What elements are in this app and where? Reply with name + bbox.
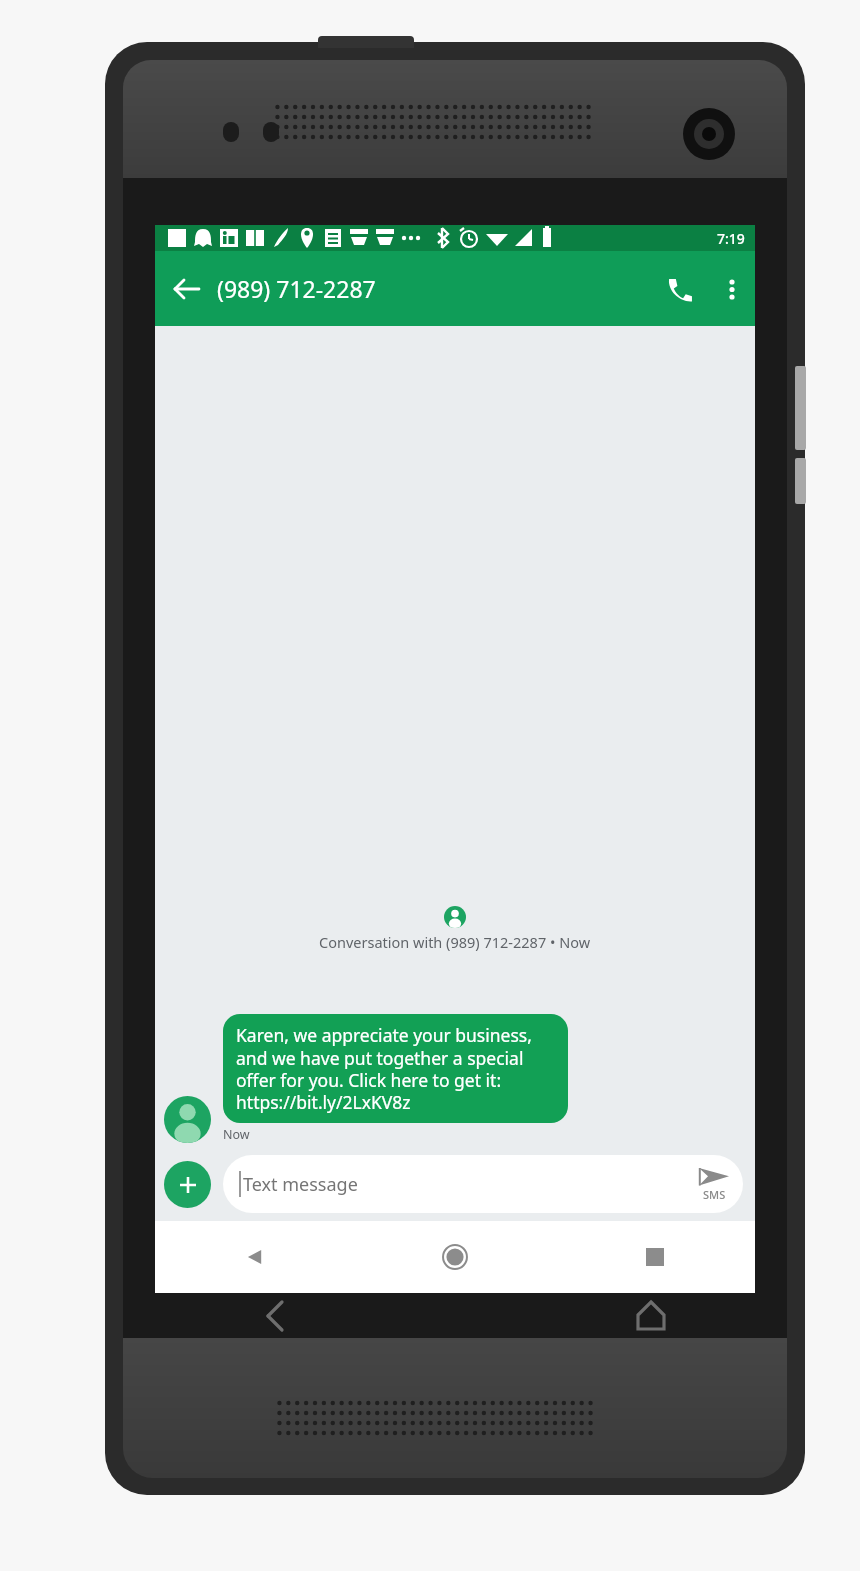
button[interactable]: Karen, we appreciate your business, and … (223, 1014, 568, 1123)
button[interactable]: Home (355, 1221, 555, 1293)
button[interactable]: Recents (555, 1221, 755, 1293)
button[interactable]: Attach (164, 1161, 211, 1208)
button[interactable]: Back (155, 251, 217, 326)
staticText: Now (223, 1126, 250, 1143)
button[interactable]: Back (155, 1221, 355, 1293)
staticText: Conversation with (989) 712-2287 • Now (319, 932, 591, 952)
staticText: SMS (703, 1187, 726, 1202)
staticText: 7:19 (717, 229, 745, 248)
button[interactable]: More options (709, 251, 755, 326)
staticText: Text message (243, 1172, 358, 1197)
button[interactable]: Text message (223, 1155, 743, 1213)
button[interactable]: Call (651, 251, 709, 326)
staticText: Karen, we appreciate your business, and … (236, 1023, 555, 1114)
staticText: (989) 712-2287 (217, 273, 376, 304)
